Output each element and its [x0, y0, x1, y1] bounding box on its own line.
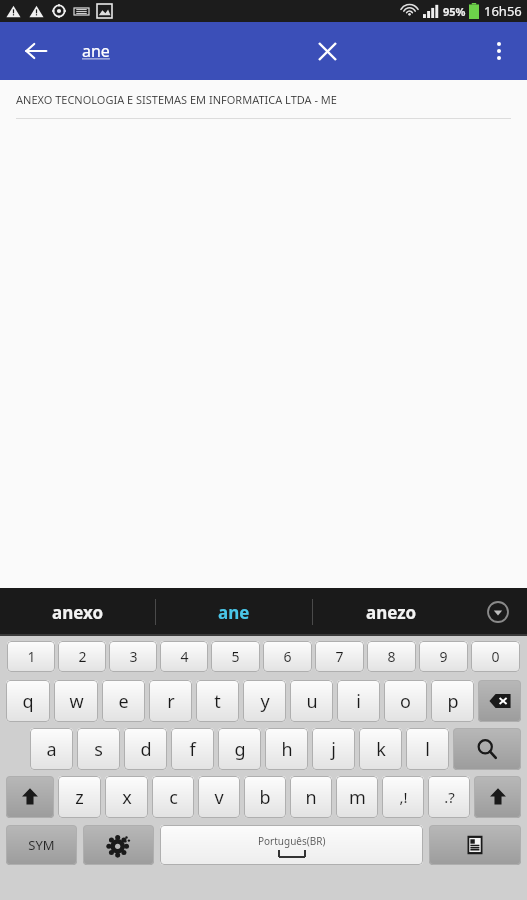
staticText: Português(BR)	[258, 834, 326, 848]
button[interactable]: 4	[160, 641, 208, 672]
button[interactable]: ane	[156, 588, 312, 636]
staticText: 4	[180, 647, 189, 666]
staticText: v	[214, 785, 224, 810]
button[interactable]: p	[431, 680, 474, 722]
button[interactable]: m	[336, 776, 378, 818]
button[interactable]: x	[105, 776, 148, 818]
button[interactable]: anexo	[0, 588, 155, 636]
staticText: 3	[129, 647, 138, 666]
staticText: m	[349, 785, 366, 810]
staticText: t	[214, 689, 221, 714]
button[interactable]: 5	[211, 641, 260, 672]
button[interactable]: o	[384, 680, 427, 722]
staticText: anexo	[52, 601, 104, 624]
button[interactable]: Clear search	[305, 29, 349, 73]
staticText: k	[376, 737, 386, 762]
staticText: w	[69, 689, 84, 714]
staticText: r	[167, 689, 175, 714]
staticText: .?	[444, 787, 455, 807]
staticText: 0	[491, 647, 500, 666]
staticText: o	[400, 689, 411, 714]
staticText: 9	[439, 647, 448, 666]
button[interactable]: Backspace	[478, 680, 521, 722]
button[interactable]: Back	[14, 29, 58, 73]
staticText: ANEXO TECNOLOGIA E SISTEMAS EM INFORMATI…	[16, 92, 337, 107]
staticText: anezo	[366, 601, 417, 624]
staticText: n	[305, 785, 317, 810]
button[interactable]: r	[149, 680, 192, 722]
button[interactable]: Search	[453, 728, 521, 770]
staticText: ,!	[399, 787, 408, 807]
staticText: h	[281, 737, 293, 762]
button[interactable]: Português(BR)	[160, 825, 423, 865]
button[interactable]: Expand suggestions	[469, 588, 527, 636]
button[interactable]: c	[152, 776, 194, 818]
staticText: u	[306, 689, 318, 714]
button[interactable]: y	[243, 680, 286, 722]
staticText: 16h56	[484, 2, 522, 20]
button[interactable]: z	[58, 776, 101, 818]
staticText: 5	[231, 647, 240, 666]
button[interactable]: Clipboard	[429, 825, 521, 865]
staticText: j	[331, 737, 336, 762]
button[interactable]: More options	[477, 29, 521, 73]
button[interactable]: 2	[58, 641, 106, 672]
staticText: z	[75, 785, 84, 810]
button[interactable]: n	[290, 776, 332, 818]
button[interactable]: e	[102, 680, 145, 722]
button[interactable]: h	[265, 728, 308, 770]
button[interactable]: t	[196, 680, 239, 722]
staticText: 2	[78, 647, 87, 666]
button[interactable]: SYM	[6, 825, 77, 865]
button[interactable]: i	[337, 680, 380, 722]
staticText: p	[447, 689, 459, 714]
button[interactable]: 3	[109, 641, 157, 672]
button[interactable]: .?	[428, 776, 470, 818]
staticText: x	[122, 785, 132, 810]
staticText: 95%	[443, 4, 466, 19]
button[interactable]: a	[30, 728, 73, 770]
staticText: SYM	[28, 836, 55, 854]
staticText: b	[259, 785, 271, 810]
staticText: q	[22, 689, 34, 714]
button[interactable]: 7	[315, 641, 364, 672]
button[interactable]: Shift	[6, 776, 54, 818]
staticText: c	[169, 785, 178, 810]
staticText: d	[140, 737, 152, 762]
button[interactable]: 9	[419, 641, 468, 672]
button[interactable]: 6	[263, 641, 312, 672]
staticText: 7	[335, 647, 344, 666]
staticText: y	[260, 689, 270, 714]
staticText: i	[356, 689, 361, 714]
button[interactable]: Keyboard settings	[83, 825, 154, 865]
button[interactable]: ANEXO TECNOLOGIA E SISTEMAS EM INFORMATI…	[0, 80, 527, 119]
staticText: s	[94, 737, 103, 762]
button[interactable]: 1	[7, 641, 55, 672]
button[interactable]: k	[359, 728, 402, 770]
button[interactable]: u	[290, 680, 333, 722]
staticText: ane	[82, 40, 110, 62]
button[interactable]: ,!	[382, 776, 424, 818]
button[interactable]: v	[198, 776, 240, 818]
staticText: f	[189, 737, 196, 762]
button[interactable]: d	[124, 728, 167, 770]
button[interactable]: b	[244, 776, 286, 818]
staticText: ane	[218, 601, 250, 624]
button[interactable]: s	[77, 728, 120, 770]
button[interactable]: q	[6, 680, 50, 722]
staticText: a	[46, 737, 57, 762]
button[interactable]: g	[218, 728, 261, 770]
staticText: 6	[283, 647, 292, 666]
button[interactable]: l	[406, 728, 449, 770]
button[interactable]: 0	[471, 641, 520, 672]
staticText: 1	[27, 647, 36, 666]
staticText: g	[234, 737, 246, 762]
button[interactable]: ane	[82, 22, 110, 80]
button[interactable]: j	[312, 728, 355, 770]
button[interactable]: 8	[367, 641, 416, 672]
button[interactable]: Shift	[474, 776, 521, 818]
button[interactable]: f	[171, 728, 214, 770]
button[interactable]: w	[54, 680, 98, 722]
button[interactable]: anezo	[313, 588, 469, 636]
staticText: l	[425, 737, 430, 762]
